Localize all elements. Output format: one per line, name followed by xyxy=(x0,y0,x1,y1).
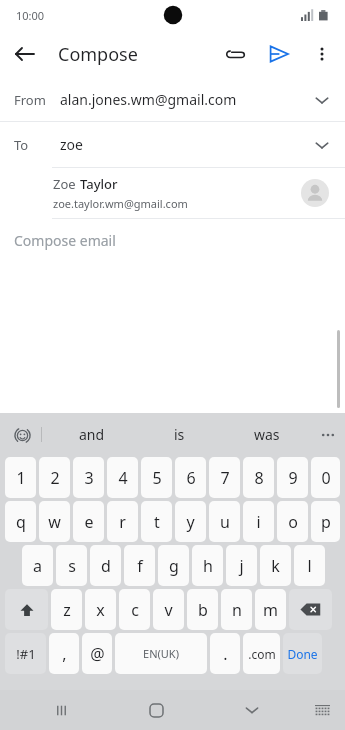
button[interactable]: l xyxy=(294,545,325,586)
button[interactable]: 0 xyxy=(311,457,340,498)
staticText: j xyxy=(239,555,244,577)
button[interactable]: w xyxy=(39,501,70,542)
button[interactable]: More options xyxy=(301,33,343,75)
button[interactable]: g xyxy=(158,545,189,586)
staticText: d xyxy=(101,555,111,577)
button[interactable]: n xyxy=(221,589,252,630)
staticText: u xyxy=(220,511,230,533)
button[interactable]: h xyxy=(192,545,223,586)
staticText: v xyxy=(164,599,173,621)
button[interactable]: r xyxy=(107,501,138,542)
button[interactable]: s xyxy=(56,545,87,586)
button[interactable]: key xyxy=(5,589,48,630)
staticText: zoe xyxy=(60,135,83,154)
button[interactable]: u xyxy=(209,501,240,542)
button[interactable]: b xyxy=(187,589,218,630)
button[interactable]: 1 xyxy=(5,457,36,498)
button[interactable]: Home xyxy=(109,690,204,730)
button[interactable]: 3 xyxy=(73,457,104,498)
button[interactable]: was xyxy=(254,425,280,444)
button[interactable]: d xyxy=(90,545,121,586)
staticText: x xyxy=(96,599,105,621)
button[interactable]: f xyxy=(124,545,155,586)
button[interactable]: e xyxy=(73,501,104,542)
staticText: o xyxy=(288,511,298,533)
staticText: 6 xyxy=(186,467,196,489)
staticText: b xyxy=(198,599,208,621)
button[interactable]: z xyxy=(51,589,82,630)
button[interactable]: , xyxy=(49,633,79,674)
button[interactable]: !#1 xyxy=(5,633,46,674)
button[interactable]: 6 xyxy=(175,457,206,498)
button[interactable]: 8 xyxy=(243,457,274,498)
button[interactable]: is xyxy=(174,425,185,444)
staticText: m xyxy=(263,599,278,621)
staticText: .com xyxy=(248,646,276,662)
staticText: t xyxy=(154,511,160,533)
button[interactable]: @ xyxy=(82,633,112,674)
staticText: q xyxy=(16,511,26,533)
staticText: 2 xyxy=(50,467,60,489)
button[interactable]: Stickers xyxy=(9,422,35,448)
button[interactable]: Back xyxy=(0,30,48,78)
button[interactable]: .com xyxy=(243,633,280,674)
staticText: z xyxy=(63,599,71,621)
staticText: f xyxy=(137,555,143,577)
button[interactable]: i xyxy=(243,501,274,542)
button[interactable]: m xyxy=(255,589,286,630)
staticText: 1 xyxy=(16,467,26,489)
button[interactable]: 7 xyxy=(209,457,240,498)
staticText: From xyxy=(14,91,60,109)
button[interactable]: Compose email xyxy=(0,219,345,730)
staticText: 3 xyxy=(84,467,94,489)
button[interactable]: q xyxy=(5,501,36,542)
button[interactable]: 4 xyxy=(107,457,138,498)
button[interactable]: Zoe xyxy=(0,168,345,218)
staticText: 9 xyxy=(288,467,298,489)
button[interactable]: o xyxy=(277,501,308,542)
button[interactable]: v xyxy=(153,589,184,630)
button[interactable]: c xyxy=(119,589,150,630)
button[interactable]: p xyxy=(311,501,340,542)
staticText: . xyxy=(223,643,228,665)
button[interactable]: More suggestions xyxy=(311,413,345,456)
button[interactable]: y xyxy=(175,501,206,542)
button[interactable]: 2 xyxy=(39,457,70,498)
staticText: 7 xyxy=(220,467,230,489)
staticText: Compose xyxy=(58,42,138,67)
staticText: zoe.taylor.wm@gmail.com xyxy=(53,196,188,211)
button[interactable]: and xyxy=(79,425,105,444)
button[interactable]: a xyxy=(22,545,53,586)
staticText: Done xyxy=(287,646,318,662)
button[interactable]: j xyxy=(226,545,257,586)
button[interactable]: Hide keyboard xyxy=(204,690,299,730)
button[interactable]: Change keyboard xyxy=(299,690,345,730)
staticText: alan.jones.wm@gmail.com xyxy=(60,90,237,109)
button[interactable]: k xyxy=(260,545,291,586)
button[interactable]: t xyxy=(141,501,172,542)
button[interactable]: Recents xyxy=(14,690,109,730)
staticText: Compose email xyxy=(14,231,116,250)
button[interactable]: 5 xyxy=(141,457,172,498)
staticText: 8 xyxy=(254,467,264,489)
button[interactable]: EN(UK) xyxy=(115,633,207,674)
staticText: 10:00 xyxy=(16,8,45,23)
staticText: i xyxy=(256,511,261,533)
staticText: l xyxy=(307,555,312,577)
button[interactable]: Send xyxy=(257,32,301,76)
staticText: , xyxy=(62,643,67,665)
button[interactable]: 9 xyxy=(277,457,308,498)
staticText: 5 xyxy=(152,467,162,489)
staticText: Zoe xyxy=(53,175,80,193)
button[interactable]: x xyxy=(85,589,116,630)
button[interactable]: Attach file xyxy=(213,32,257,76)
button[interactable]: To xyxy=(0,122,345,167)
staticText: g xyxy=(169,555,179,577)
staticText: k xyxy=(271,555,280,577)
staticText: EN(UK) xyxy=(143,646,179,661)
button[interactable]: . xyxy=(210,633,240,674)
button[interactable]: Done xyxy=(283,633,322,674)
button[interactable]: key xyxy=(289,589,332,630)
staticText: !#1 xyxy=(16,645,36,663)
button[interactable]: From xyxy=(0,78,345,121)
